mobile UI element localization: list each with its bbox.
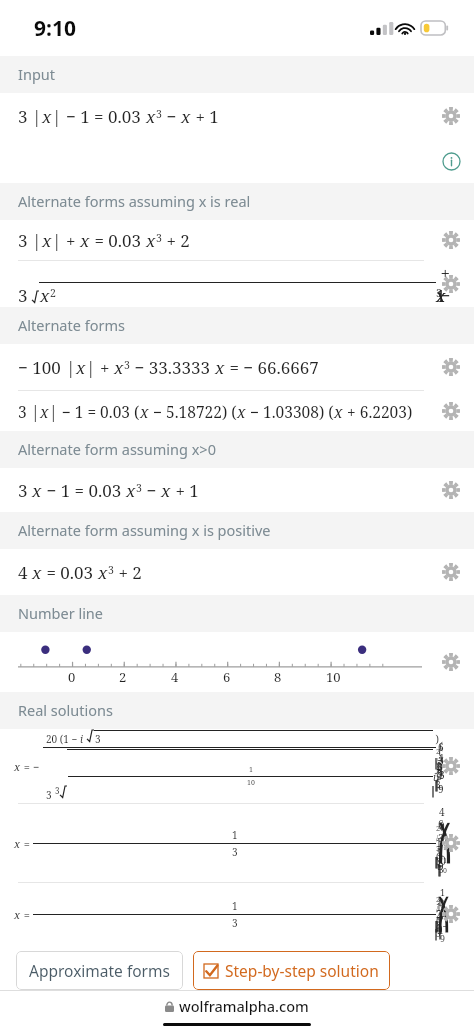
staticText: − 5.18722) ( <box>149 401 237 422</box>
staticText: 10 <box>247 778 255 788</box>
button[interactable]: Approximate forms <box>16 951 183 990</box>
staticText: 1 <box>249 765 253 775</box>
staticText: Alternate forms assuming x is real <box>18 191 251 211</box>
staticText: x <box>76 356 86 379</box>
staticText: + 6.2203) <box>343 401 413 422</box>
staticText: 20 (1 − <box>46 732 80 746</box>
staticText: x <box>161 479 171 502</box>
staticText: 9:10 <box>34 14 76 43</box>
staticText: | <box>32 229 42 252</box>
button[interactable]: Options <box>436 475 466 505</box>
staticText: 3 <box>156 107 162 121</box>
staticText: 2 <box>119 668 127 686</box>
staticText: − 1.03308) ( <box>246 401 334 422</box>
button[interactable]: Options <box>436 101 466 131</box>
staticText: x <box>215 356 225 379</box>
button[interactable]: x <box>0 883 474 945</box>
staticText: x <box>98 561 108 584</box>
staticText: Real solutions <box>18 700 113 720</box>
staticText: x <box>80 229 90 252</box>
staticText: x <box>14 836 21 851</box>
staticText: x <box>14 907 21 922</box>
staticText: 2 <box>50 286 56 300</box>
staticText: i <box>80 732 84 746</box>
button[interactable]: x <box>0 804 474 882</box>
staticText: | <box>31 401 40 422</box>
staticText: x <box>40 284 50 307</box>
button[interactable]: 4 <box>0 549 474 595</box>
staticText: 4 <box>171 668 179 686</box>
button[interactable]: 3 <box>0 391 474 431</box>
button[interactable]: Step-by-step solution <box>193 951 390 990</box>
staticText: 10 <box>326 668 341 686</box>
staticText: Number line <box>18 603 104 623</box>
staticText: Step-by-step solution <box>225 960 379 981</box>
staticText: Input <box>18 64 55 84</box>
button[interactable]: Options <box>436 396 466 426</box>
staticText: x <box>146 105 156 128</box>
staticText: − 33.3333 <box>130 356 215 379</box>
button[interactable]: x <box>0 729 474 803</box>
staticText: x <box>40 401 49 422</box>
staticText: x <box>14 759 21 774</box>
staticText: + 1 <box>191 105 219 128</box>
button[interactable]: 3 <box>0 261 474 307</box>
button[interactable]: Options <box>436 557 466 587</box>
staticText: − <box>142 479 161 502</box>
staticText: 1 <box>232 828 238 842</box>
staticText: 3 <box>124 358 130 372</box>
staticText: | <box>32 105 42 128</box>
staticText: = <box>21 836 33 851</box>
staticText: + 2 <box>162 229 190 252</box>
button[interactable]: 3 <box>0 468 474 512</box>
staticText: = − 66.6667 <box>225 356 319 379</box>
staticText: + 2 <box>114 561 142 584</box>
staticText: − 100 <box>18 356 66 379</box>
staticText: x <box>237 401 246 422</box>
staticText: | − 1 = 0.03 ( <box>49 401 140 422</box>
staticText: 3 <box>18 105 32 128</box>
button[interactable]: Options <box>436 751 466 781</box>
staticText: 3 <box>46 788 55 802</box>
staticText: 3 <box>18 229 32 252</box>
button[interactable]: Options <box>436 647 466 677</box>
button[interactable]: 3 <box>0 220 474 260</box>
staticText: = <box>21 907 33 922</box>
staticText: x <box>114 356 124 379</box>
staticText: 3 <box>108 563 114 577</box>
staticText: 8 <box>274 668 282 686</box>
button[interactable]: Options <box>436 269 466 299</box>
button[interactable]: − 100 <box>0 344 474 390</box>
staticText: x <box>42 229 52 252</box>
staticText: − <box>162 105 181 128</box>
button[interactable]: Options <box>436 225 466 255</box>
button[interactable]: Options <box>436 899 466 929</box>
staticText: 3 <box>18 284 32 307</box>
staticText: = 0.03 <box>90 229 146 252</box>
staticText: x <box>140 401 149 422</box>
button[interactable]: Information <box>436 146 466 176</box>
staticText: | + <box>52 229 80 252</box>
staticText: + 1 <box>171 479 199 502</box>
staticText: 1 <box>232 899 238 913</box>
button[interactable]: 0 <box>0 632 474 692</box>
button[interactable]: Options <box>436 352 466 382</box>
button[interactable]: Options <box>436 828 466 858</box>
staticText: x <box>181 105 191 128</box>
staticText: 3 <box>95 732 101 746</box>
staticText: 0 <box>68 668 76 686</box>
staticText: wolframalpha.com <box>179 996 309 1016</box>
button[interactable]: 3 <box>0 93 474 139</box>
staticText: Alternate forms <box>18 315 125 335</box>
staticText: x <box>146 229 156 252</box>
staticText: | − 1 = 0.03 <box>52 105 146 128</box>
staticText: 3 <box>156 231 162 245</box>
staticText: Approximate forms <box>29 960 170 981</box>
staticText: = − <box>21 759 43 774</box>
staticText: Alternate form assuming x is positive <box>18 520 271 540</box>
staticText: 3 <box>136 481 142 495</box>
staticText: | <box>66 356 76 379</box>
staticText: x <box>126 479 136 502</box>
staticText: x <box>32 561 42 584</box>
staticText: 3 <box>232 916 238 930</box>
